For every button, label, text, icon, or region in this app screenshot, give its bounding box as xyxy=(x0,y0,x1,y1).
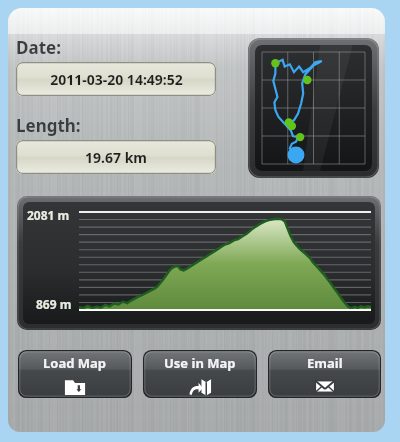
button[interactable]: Load Map xyxy=(18,350,132,398)
staticText: 869 m xyxy=(36,296,72,312)
staticText: Email xyxy=(307,354,343,372)
staticText: Use in Map xyxy=(164,354,236,372)
button[interactable]: Email xyxy=(268,350,381,398)
button[interactable]: Use in Map xyxy=(143,350,257,398)
staticText: 2011-03-20 14:49:52 xyxy=(50,70,183,89)
button[interactable]: Elevation profile xyxy=(17,196,381,330)
staticText: Length: xyxy=(16,114,81,137)
staticText: Load Map xyxy=(43,354,107,372)
staticText: Date: xyxy=(16,36,61,59)
button[interactable]: 19.67 km xyxy=(16,140,216,174)
button[interactable]: Track map preview xyxy=(248,38,379,178)
staticText: 2081 m xyxy=(27,207,70,223)
button[interactable]: 2011-03-20 14:49:52 xyxy=(16,62,216,96)
staticText: 19.67 km xyxy=(85,148,147,167)
